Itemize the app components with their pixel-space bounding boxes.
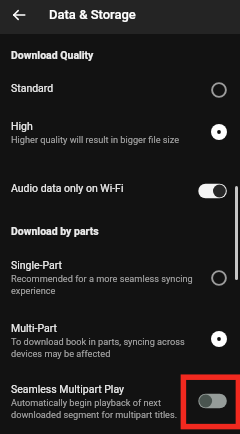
staticText: Seamless Multipart Play [11, 383, 125, 395]
staticText: To download book in parts, syncing acros… [11, 336, 201, 360]
button[interactable] [0, 316, 240, 364]
staticText: Standard [11, 82, 54, 94]
staticText: Automatically begin playback of next dow… [11, 397, 201, 421]
button[interactable]: Option [208, 79, 230, 101]
staticText: Download by parts [11, 225, 99, 237]
button[interactable]: Toggle off [197, 391, 229, 411]
button[interactable]: Selected option [208, 121, 230, 143]
button[interactable]: Selected option [208, 328, 230, 350]
button[interactable]: Option [208, 267, 230, 289]
button[interactable] [0, 253, 240, 301]
button[interactable] [0, 113, 240, 149]
staticText: Data & Storage [49, 7, 136, 22]
staticText: High [11, 120, 33, 132]
staticText: Audio data only on Wi-Fi [11, 182, 124, 194]
staticText: Recommended for a more seamless syncing … [11, 273, 201, 297]
staticText: Higher quality will result in bigger fil… [11, 134, 180, 145]
staticText: Multi-Part [11, 322, 57, 334]
button[interactable] [0, 76, 240, 102]
button[interactable] [0, 177, 240, 204]
button[interactable]: Toggle on [197, 181, 229, 201]
staticText: Download Quality [11, 49, 94, 61]
button[interactable]: Back [2, 0, 35, 33]
staticText: Single-Part [11, 259, 63, 271]
button[interactable] [0, 377, 240, 427]
